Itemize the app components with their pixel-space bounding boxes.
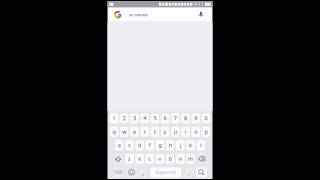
button[interactable]: ac market [108, 8, 211, 22]
staticText: e [133, 128, 136, 135]
button[interactable]: Backspace [197, 154, 207, 164]
button[interactable]: i [181, 127, 190, 137]
staticText: m [188, 155, 193, 162]
button[interactable]: s [125, 140, 133, 150]
button[interactable]: u [171, 127, 179, 137]
button[interactable]: 9 [192, 113, 200, 123]
staticText: p [204, 128, 207, 135]
button[interactable]: b [166, 154, 174, 164]
button[interactable]: a [115, 140, 123, 150]
staticText: f [149, 142, 151, 149]
button[interactable]: Search [196, 167, 207, 177]
staticText: English (US) [156, 170, 176, 175]
button[interactable]: Shift [113, 154, 123, 164]
button[interactable]: , [141, 167, 146, 177]
button[interactable]: d [135, 140, 144, 150]
staticText: 6 [164, 115, 167, 122]
button[interactable]: h [166, 140, 174, 150]
staticText: t [154, 128, 156, 135]
button[interactable]: c [146, 154, 154, 164]
button[interactable]: 4 [141, 113, 149, 123]
staticText: 3 [133, 115, 136, 122]
button[interactable]: v [156, 154, 164, 164]
staticText: b [169, 155, 172, 162]
button[interactable]: e [130, 127, 139, 137]
button[interactable]: Emoji [127, 167, 136, 177]
staticText: j [180, 142, 181, 149]
staticText: s [128, 142, 131, 149]
button[interactable]: t [151, 127, 159, 137]
staticText: ac market [129, 12, 147, 17]
button[interactable]: n [176, 154, 184, 164]
button[interactable]: z [125, 154, 133, 164]
button[interactable]: r [141, 127, 149, 137]
staticText: q [113, 128, 116, 135]
staticText: u [174, 128, 177, 135]
staticText: n [179, 155, 182, 162]
button[interactable]: m [186, 154, 195, 164]
staticText: 8 [184, 115, 187, 122]
staticText: 2 [123, 115, 126, 122]
staticText: x [138, 155, 141, 162]
button[interactable]: w [120, 127, 128, 137]
button[interactable]: 8 [181, 113, 190, 123]
staticText: a [118, 142, 121, 149]
staticText: v [158, 155, 161, 162]
staticText: 9 [194, 115, 197, 122]
button[interactable]: . [186, 167, 191, 177]
button[interactable]: k [186, 140, 195, 150]
button[interactable]: 6 [161, 113, 169, 123]
staticText: , [142, 168, 144, 177]
button[interactable]: p [202, 127, 210, 137]
staticText: o [194, 128, 197, 135]
staticText: 7 [174, 115, 177, 122]
button[interactable]: g [156, 140, 164, 150]
button[interactable]: 7 [171, 113, 179, 123]
staticText: c [148, 155, 151, 162]
button[interactable]: f [146, 140, 154, 150]
staticText: 4:11 [194, 1, 204, 8]
staticText: y [164, 128, 167, 135]
staticText: g [158, 142, 161, 149]
staticText: ?123 [114, 170, 122, 175]
staticText: h [169, 142, 172, 149]
staticText: 0 [204, 115, 207, 122]
staticText: 1 [113, 115, 116, 122]
staticText: w [122, 128, 126, 135]
button[interactable]: o [192, 127, 200, 137]
staticText: 4 [143, 115, 146, 122]
staticText: . [187, 168, 189, 177]
button[interactable]: x [135, 154, 144, 164]
staticText: d [138, 142, 141, 149]
button[interactable]: 5 [151, 113, 159, 123]
staticText: z [128, 155, 131, 162]
staticText: r [144, 128, 146, 135]
staticText: 5 [153, 115, 156, 122]
staticText: k [189, 142, 192, 149]
button[interactable]: j [176, 140, 184, 150]
button[interactable]: y [161, 127, 169, 137]
button[interactable]: l [197, 140, 205, 150]
button[interactable]: 2 [120, 113, 128, 123]
staticText: i [185, 128, 186, 135]
button[interactable]: 1 [110, 113, 118, 123]
staticText: l [200, 142, 201, 149]
button[interactable]: ?123 [113, 167, 122, 177]
button[interactable]: 0 [202, 113, 210, 123]
button[interactable]: English (US) [151, 167, 181, 177]
button[interactable]: 3 [130, 113, 139, 123]
button[interactable]: q [110, 127, 118, 137]
